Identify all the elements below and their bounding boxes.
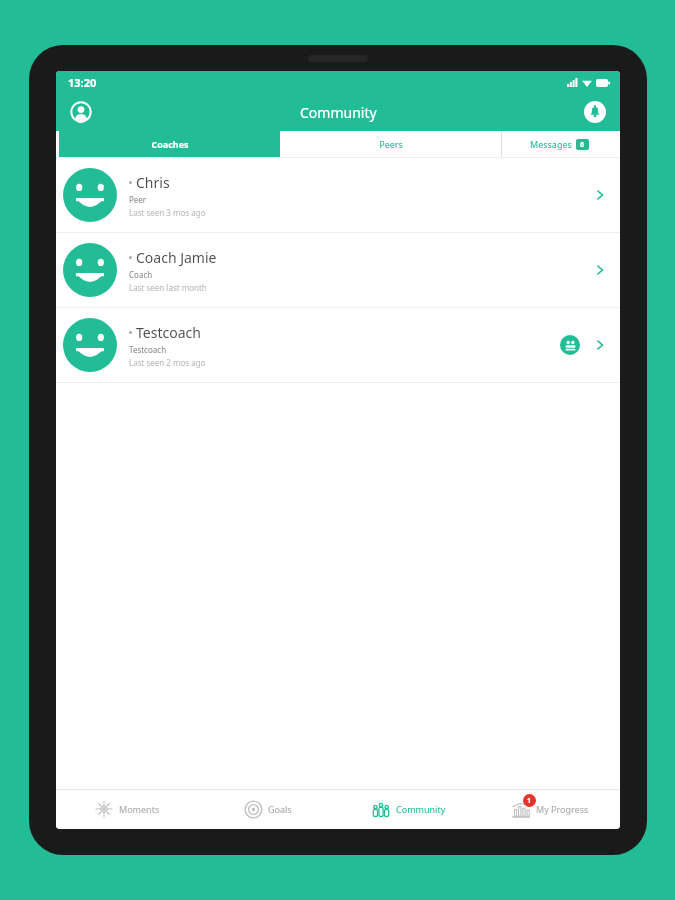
- staticText: Testcoach: [136, 323, 201, 342]
- button[interactable]: Chris: [56, 158, 620, 232]
- button[interactable]: Open: [590, 335, 610, 355]
- button[interactable]: Peers: [280, 131, 501, 157]
- staticText: Last seen 2 mos ago: [129, 357, 206, 368]
- staticText: My Progress: [536, 803, 589, 815]
- button[interactable]: Group: [560, 335, 580, 355]
- staticText: 1: [527, 796, 532, 806]
- button[interactable]: Messages: [502, 131, 617, 157]
- button[interactable]: Profile: [64, 95, 98, 129]
- staticText: Messages: [530, 138, 572, 150]
- staticText: Coach: [129, 269, 153, 280]
- staticText: Peers: [379, 138, 403, 150]
- staticText: Coach Jamie: [136, 248, 217, 267]
- button[interactable]: Open: [590, 260, 610, 280]
- button[interactable]: Coach Jamie: [56, 233, 620, 307]
- button[interactable]: Notifications: [578, 95, 612, 129]
- staticText: Coaches: [151, 138, 189, 150]
- button[interactable]: Community: [338, 789, 479, 829]
- staticText: Moments: [119, 803, 160, 815]
- button[interactable]: Testcoach: [56, 308, 620, 382]
- button[interactable]: 1: [479, 789, 620, 829]
- staticText: Chris: [136, 173, 170, 192]
- button[interactable]: Moments: [56, 789, 197, 829]
- staticText: Community: [396, 803, 446, 815]
- staticText: 13:20: [68, 75, 97, 90]
- staticText: Goals: [268, 803, 292, 815]
- button[interactable]: Goals: [197, 789, 338, 829]
- button[interactable]: Coaches: [59, 131, 280, 157]
- staticText: Last seen last month: [129, 282, 207, 293]
- staticText: 6: [580, 140, 585, 150]
- staticText: Peer: [129, 194, 147, 205]
- button[interactable]: Open: [590, 185, 610, 205]
- staticText: Last seen 3 mos ago: [129, 207, 206, 218]
- staticText: Testcoach: [129, 344, 167, 355]
- staticText: Community: [300, 103, 377, 122]
